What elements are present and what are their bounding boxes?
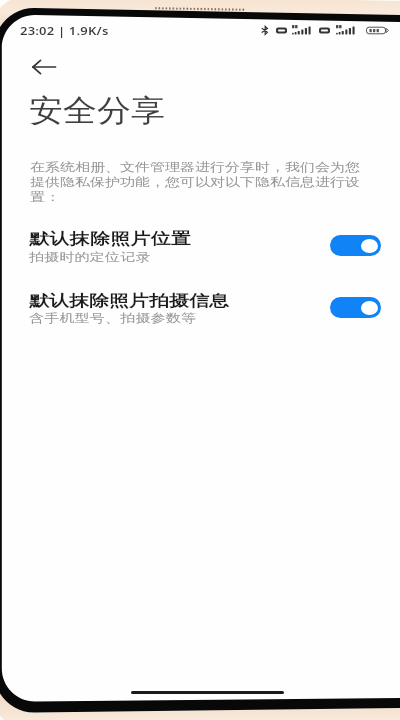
staticText: 安全分享 <box>29 91 165 130</box>
staticText: 默认抹除照片拍摄信息 <box>29 291 229 310</box>
staticText: 在系统相册、文件管理器进行分享时，我们会为您提供隐私保护功能，您可以对以下隐私信… <box>30 160 364 204</box>
button[interactable] <box>0 213 400 265</box>
staticText: 含手机型号、拍摄参数等 <box>29 311 197 326</box>
staticText: 默认抹除照片位置 <box>29 229 192 248</box>
button[interactable]: Toggle <box>330 297 381 318</box>
staticText: 拍摄时的定位记录 <box>29 250 151 265</box>
button[interactable]: Toggle <box>330 235 381 256</box>
staticText: 23:02 | 1.9K/s <box>20 24 109 38</box>
button[interactable] <box>0 275 400 327</box>
button[interactable]: Back <box>25 48 63 86</box>
